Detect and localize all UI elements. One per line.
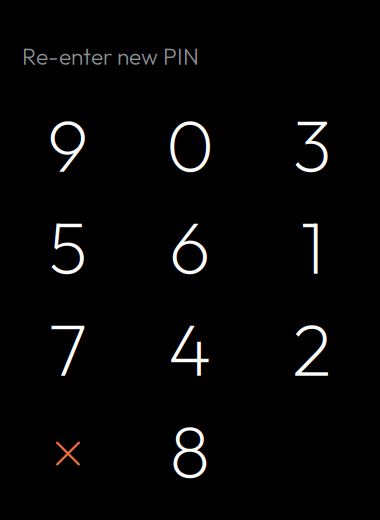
staticText: 2: [292, 302, 332, 395]
button[interactable]: 0: [129, 94, 251, 196]
staticText: 6: [169, 200, 211, 293]
staticText: 9: [47, 98, 89, 191]
button[interactable]: 6: [129, 196, 251, 298]
button[interactable]: 9: [7, 94, 129, 196]
button[interactable]: Delete: [7, 400, 129, 502]
button[interactable]: 3: [251, 94, 373, 196]
button[interactable]: 4: [129, 298, 251, 400]
staticText: 0: [166, 98, 214, 191]
button[interactable]: 1: [251, 196, 373, 298]
staticText: 3: [292, 98, 331, 191]
staticText: Re-enter new PIN: [22, 42, 199, 71]
staticText: 7: [48, 302, 87, 395]
button[interactable]: 8: [129, 400, 251, 502]
staticText: 4: [168, 302, 212, 395]
button[interactable]: 2: [251, 298, 373, 400]
button[interactable]: 7: [7, 298, 129, 400]
button[interactable]: 5: [7, 196, 129, 298]
staticText: 5: [48, 200, 87, 293]
staticText: 1: [300, 200, 324, 293]
staticText: 8: [169, 404, 210, 497]
